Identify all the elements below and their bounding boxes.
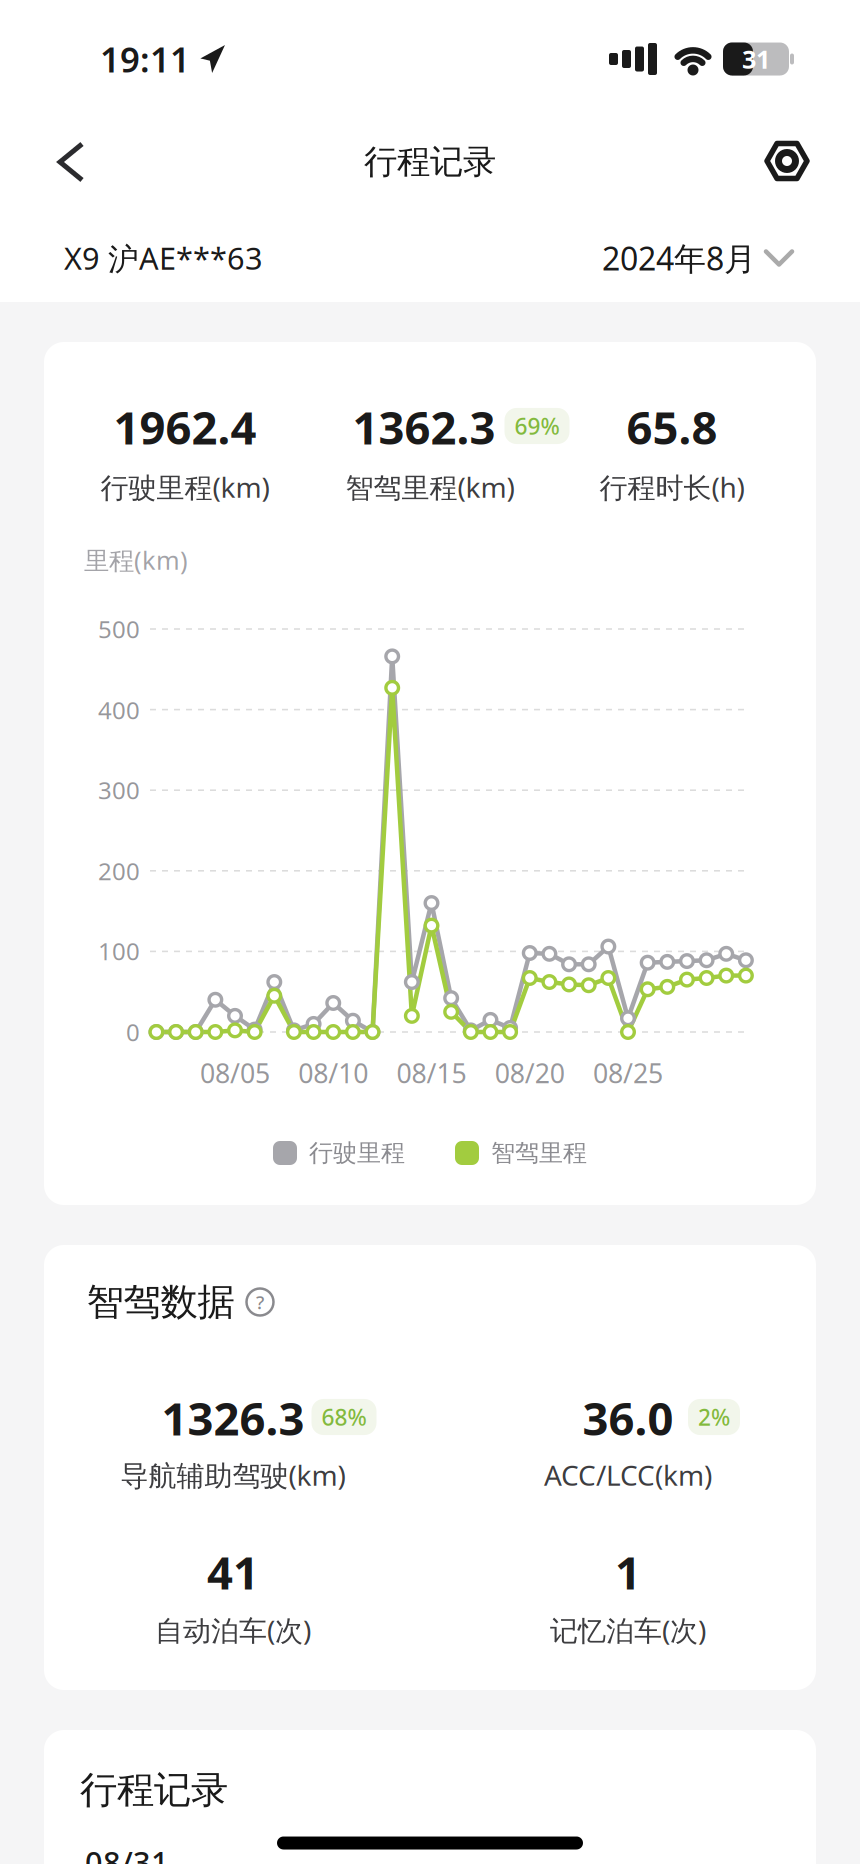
staticText: 行驶里程 bbox=[309, 1138, 405, 1168]
staticText: 记忆泊车(次) bbox=[550, 1611, 706, 1649]
button[interactable]: Settings bbox=[755, 131, 819, 190]
staticText: 行程时长(h) bbox=[599, 468, 744, 506]
staticText: 08/20 bbox=[495, 1055, 565, 1091]
staticText: 08/25 bbox=[593, 1055, 663, 1091]
button[interactable]: 2024年8月 bbox=[602, 237, 792, 279]
staticText: 69% bbox=[514, 411, 559, 441]
staticText: X9 沪AE***63 bbox=[64, 238, 263, 278]
button[interactable]: Back bbox=[46, 130, 96, 194]
staticText: 行程记录 bbox=[364, 141, 496, 182]
staticText: 2% bbox=[698, 1402, 730, 1432]
staticText: 智驾里程 bbox=[491, 1138, 587, 1168]
staticText: 100 bbox=[98, 935, 140, 967]
staticText: 36.0 bbox=[582, 1388, 673, 1448]
staticText: 1 bbox=[615, 1542, 641, 1602]
staticText: 智驾里程(km) bbox=[345, 468, 514, 506]
staticText: 1962.4 bbox=[113, 397, 256, 457]
staticText: 19:11 bbox=[100, 36, 190, 82]
staticText: 500 bbox=[98, 613, 140, 645]
button[interactable]: Help bbox=[246, 1288, 273, 1315]
staticText: 1326.3 bbox=[161, 1388, 304, 1448]
staticText: 68% bbox=[321, 1402, 366, 1432]
staticText: 行驶里程(km) bbox=[100, 468, 269, 506]
staticText: 2024年8月 bbox=[602, 237, 756, 279]
staticText: 200 bbox=[98, 855, 140, 887]
staticText: 智驾数据 bbox=[86, 1279, 234, 1325]
staticText: 08/05 bbox=[200, 1055, 270, 1091]
staticText: 31 bbox=[742, 42, 770, 76]
staticText: 行程记录 bbox=[80, 1767, 228, 1813]
staticText: 400 bbox=[98, 694, 140, 726]
staticText: 08/15 bbox=[396, 1055, 466, 1091]
staticText: 0 bbox=[126, 1016, 140, 1048]
staticText: 自动泊车(次) bbox=[155, 1611, 311, 1649]
staticText: 08/10 bbox=[298, 1055, 368, 1091]
staticText: 300 bbox=[98, 774, 140, 806]
staticText: 1362.3 bbox=[352, 397, 495, 457]
staticText: 里程(km) bbox=[84, 543, 188, 577]
staticText: 导航辅助驾驶(km) bbox=[120, 1456, 345, 1494]
staticText: 08/31 bbox=[85, 1842, 169, 1864]
staticText: 41 bbox=[207, 1542, 259, 1602]
staticText: ACC/LCC(km) bbox=[544, 1456, 712, 1494]
staticText: 65.8 bbox=[626, 397, 717, 457]
staticText: ? bbox=[256, 1290, 264, 1314]
